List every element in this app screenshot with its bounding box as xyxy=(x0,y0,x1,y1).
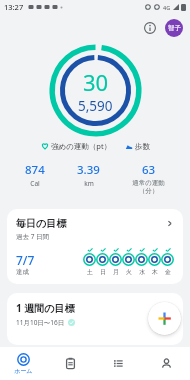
staticText: 土 xyxy=(87,268,93,276)
staticText: 11月10日〜16日 xyxy=(16,318,65,327)
button[interactable]: 情報 xyxy=(140,18,160,38)
staticText: 月 xyxy=(113,268,119,276)
staticText: 日 xyxy=(100,268,106,276)
button[interactable]: 強めの運動（pt） xyxy=(39,139,114,153)
button[interactable]: 毎日の目標 xyxy=(7,209,183,284)
button[interactable]: プロフィール xyxy=(142,347,190,380)
button[interactable]: 874 xyxy=(22,162,48,188)
staticText: ホーム xyxy=(14,367,33,375)
staticText: 4G xyxy=(163,4,171,11)
staticText: 63 xyxy=(142,162,156,178)
staticText: 歩数 xyxy=(135,142,150,151)
staticText: 智子 xyxy=(168,24,181,32)
staticText: 強めの運動（pt） xyxy=(51,141,112,151)
staticText: 7/7 xyxy=(16,252,35,268)
staticText: 達成 xyxy=(16,268,29,276)
button[interactable]: 3.39 xyxy=(74,162,103,188)
staticText: 金 xyxy=(165,268,171,276)
button[interactable]: 日誌 xyxy=(47,347,94,380)
staticText: 30 xyxy=(83,67,109,97)
staticText: 水 xyxy=(139,268,145,276)
button[interactable]: 一覧 xyxy=(94,347,142,380)
staticText: 1 週間の目標 xyxy=(16,301,75,315)
button[interactable]: ホーム xyxy=(0,347,47,380)
button[interactable]: 1 週間の目標 xyxy=(7,293,183,345)
staticText: 過去 7 日間 xyxy=(16,232,50,241)
button[interactable]: 歩数 xyxy=(123,140,152,153)
staticText: km xyxy=(84,179,94,188)
staticText: 木 xyxy=(152,268,158,276)
staticText: 火 xyxy=(126,268,132,276)
staticText: 13:27 xyxy=(4,2,24,12)
staticText: 通常の運動 （分） xyxy=(132,179,165,195)
staticText: 毎日の目標 xyxy=(16,217,67,230)
staticText: 5,590 xyxy=(78,97,113,115)
button[interactable]: アカウント xyxy=(165,19,183,37)
staticText: 3.39 xyxy=(77,162,100,178)
button[interactable]: 追加 xyxy=(148,302,181,335)
staticText: Cal xyxy=(30,179,40,188)
button[interactable]: アクティビティ リング xyxy=(49,44,142,137)
staticText: 874 xyxy=(25,162,45,178)
button[interactable]: 63 xyxy=(129,162,168,195)
